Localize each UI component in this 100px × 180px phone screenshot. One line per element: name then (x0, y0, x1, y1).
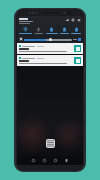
button[interactable] (19, 57, 81, 64)
button[interactable]: Back (53, 158, 58, 163)
button[interactable]: Quick setting (58, 27, 71, 34)
button[interactable]: Quick setting (45, 27, 58, 34)
button[interactable]: Expand (77, 18, 81, 22)
button[interactable]: Recents (31, 158, 36, 163)
button[interactable] (19, 45, 81, 52)
button[interactable]: App icon (46, 139, 55, 148)
button[interactable]: Quick setting (71, 27, 81, 34)
button[interactable]: Quick setting (32, 27, 45, 34)
button[interactable]: Settings (71, 18, 75, 22)
button[interactable]: Home (42, 158, 47, 163)
button[interactable]: Menu (64, 158, 69, 163)
other: Signal (65, 18, 69, 22)
button[interactable]: Quick setting (19, 27, 32, 34)
button[interactable]: Brightness (19, 37, 81, 41)
